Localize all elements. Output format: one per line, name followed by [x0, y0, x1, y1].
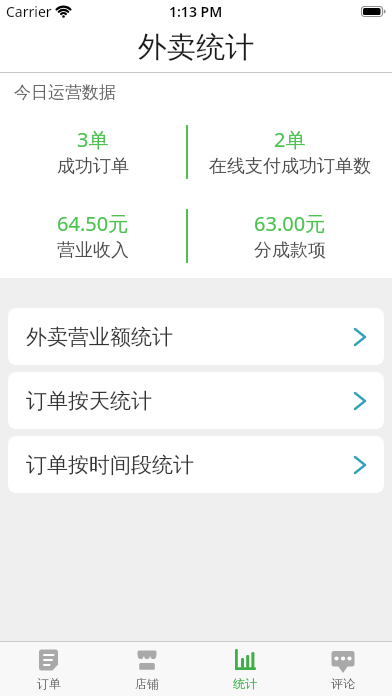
- staticText: 成功订单: [57, 155, 129, 178]
- staticText: 店铺: [135, 676, 159, 691]
- staticText: 在线支付成功订单数: [209, 155, 371, 178]
- button[interactable]: 外卖营业额统计: [8, 308, 384, 365]
- staticText: 2单: [274, 126, 306, 153]
- button[interactable]: 统计: [196, 642, 294, 696]
- staticText: 外卖统计: [138, 29, 254, 66]
- staticText: 订单按天统计: [26, 388, 152, 414]
- staticText: 1:13 PM: [169, 2, 223, 21]
- staticText: Carrier: [6, 2, 52, 21]
- button[interactable]: 订单按天统计: [8, 372, 384, 429]
- button[interactable]: 评论: [294, 642, 392, 696]
- button[interactable]: 订单: [0, 642, 98, 696]
- staticText: 3单: [77, 126, 109, 153]
- staticText: 订单按时间段统计: [26, 452, 194, 478]
- button[interactable]: 订单按时间段统计: [8, 436, 384, 493]
- staticText: 外卖营业额统计: [26, 324, 173, 350]
- staticText: 64.50元: [57, 210, 129, 237]
- staticText: 统计: [233, 676, 257, 691]
- staticText: 评论: [331, 676, 355, 691]
- staticText: 营业收入: [57, 239, 129, 262]
- button[interactable]: 店铺: [98, 642, 196, 696]
- staticText: 今日运营数据: [14, 82, 116, 103]
- staticText: 订单: [37, 676, 61, 691]
- staticText: 63.00元: [254, 210, 326, 237]
- staticText: 分成款项: [254, 239, 326, 262]
